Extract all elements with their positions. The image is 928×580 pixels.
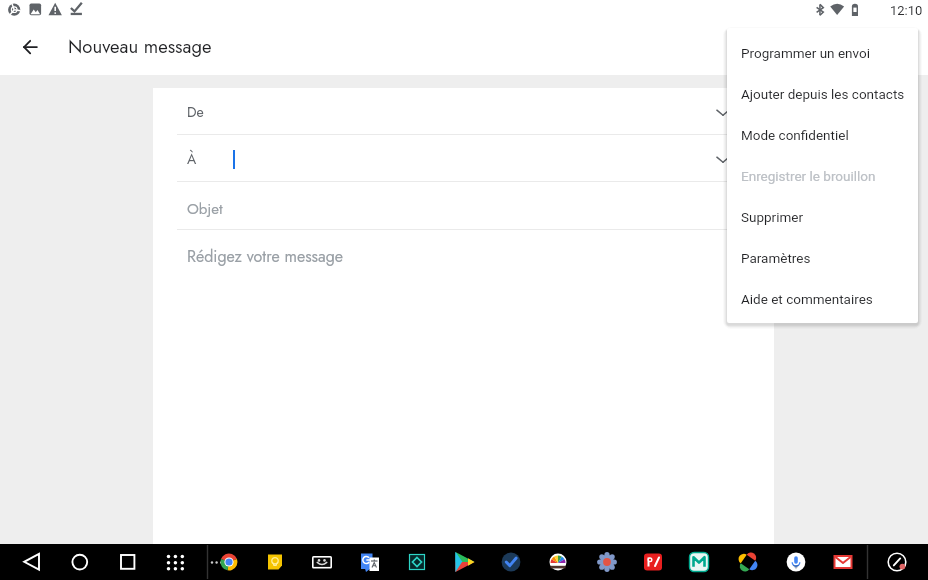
button[interactable]: Chrome	[212, 544, 246, 580]
button[interactable]: Couleurs	[541, 544, 575, 580]
staticText: Aide et commentaires	[741, 291, 873, 307]
button[interactable]: Retour	[12, 31, 48, 67]
button[interactable]: Paramètres	[590, 544, 624, 580]
button[interactable]: Compteur	[880, 544, 914, 580]
staticText: Nouveau message	[68, 33, 212, 60]
button[interactable]: À	[153, 135, 774, 181]
button[interactable]: Enregistrer le brouillon	[727, 155, 918, 196]
button[interactable]: Rédigez votre message	[153, 230, 774, 278]
button[interactable]: Applications récentes	[111, 544, 145, 580]
button[interactable]: Keep	[258, 544, 292, 580]
staticText: 12:10	[890, 3, 923, 18]
button[interactable]: Galerie	[305, 544, 339, 580]
button[interactable]: Mode confidentiel	[727, 114, 918, 155]
other: Développer	[714, 103, 732, 121]
button[interactable]: Aide et commentaires	[727, 278, 918, 319]
button[interactable]: Application	[400, 544, 434, 580]
button[interactable]: Programmer un envoi	[727, 32, 918, 73]
staticText: Supprimer	[741, 209, 804, 225]
button[interactable]: Toutes les applications	[158, 544, 192, 580]
staticText: Paramètres	[741, 250, 811, 266]
button[interactable]: Traduction	[353, 544, 387, 580]
button[interactable]: Objet	[153, 182, 774, 229]
staticText: Rédigez votre message	[187, 245, 344, 268]
button[interactable]: De	[153, 88, 774, 134]
button[interactable]: Retour	[15, 544, 49, 580]
staticText: Programmer un envoi	[741, 45, 870, 61]
button[interactable]: Assistant	[779, 544, 813, 580]
button[interactable]: Paramètres	[727, 237, 918, 278]
staticText: Ajouter depuis les contacts	[741, 86, 905, 102]
button[interactable]: Messages	[682, 544, 716, 580]
button[interactable]: Tâches	[494, 544, 528, 580]
staticText: De	[187, 102, 204, 122]
staticText: Objet	[187, 198, 223, 220]
button[interactable]: Play Store	[448, 544, 482, 580]
staticText: À	[187, 149, 197, 169]
button[interactable]: Photos	[731, 544, 765, 580]
button[interactable]: Gmail	[826, 544, 860, 580]
button[interactable]: Accueil	[63, 544, 97, 580]
button[interactable]: Ajouter depuis les contacts	[727, 73, 918, 114]
staticText: Mode confidentiel	[741, 127, 849, 143]
button[interactable]: PowerPoint	[636, 544, 670, 580]
button[interactable]: Supprimer	[727, 196, 918, 237]
staticText: Enregistrer le brouillon	[741, 168, 876, 184]
other: Développer	[714, 150, 732, 168]
